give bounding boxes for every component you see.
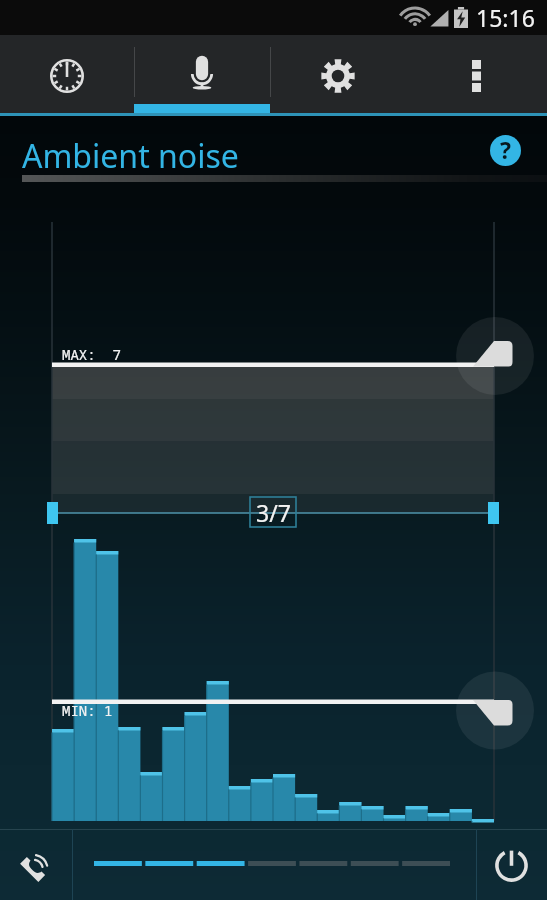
button[interactable]: Power	[476, 829, 547, 900]
staticText: MIN: 1	[62, 701, 113, 720]
staticText: Ambient noise	[22, 134, 239, 178]
staticText: 15:16	[476, 2, 535, 33]
staticText: 3/7	[256, 497, 291, 527]
button[interactable]: Call	[0, 829, 72, 900]
staticText: ?	[500, 135, 511, 165]
button[interactable]: Help	[490, 135, 521, 166]
button[interactable]: More options	[406, 35, 547, 116]
staticText: MAX: 7	[62, 345, 121, 364]
button[interactable]: Microphone	[134, 35, 270, 116]
button[interactable]: Settings	[270, 35, 406, 116]
button[interactable]: Timer	[0, 35, 134, 116]
